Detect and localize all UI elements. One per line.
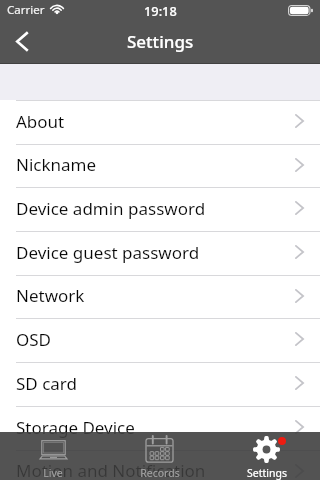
- button[interactable]: Device admin password: [0, 187, 320, 231]
- button[interactable]: Motion and Notification: [0, 450, 320, 480]
- staticText: 19:18: [144, 2, 177, 19]
- button[interactable]: Nickname: [0, 144, 320, 187]
- staticText: Network: [16, 284, 85, 307]
- button[interactable]: Back: [2, 20, 42, 63]
- button[interactable]: Settings: [213, 432, 320, 480]
- button[interactable]: OSD: [0, 318, 320, 362]
- button[interactable]: Device guest password: [0, 231, 320, 275]
- button[interactable]: Live: [0, 432, 106, 480]
- staticText: Motion and Notification: [16, 459, 206, 480]
- button[interactable]: SD card: [0, 362, 320, 406]
- staticText: SD card: [16, 372, 77, 395]
- button[interactable]: Records: [106, 432, 213, 480]
- staticText: About: [16, 110, 65, 133]
- button[interactable]: Storage Device: [0, 406, 320, 450]
- staticText: OSD: [16, 328, 52, 351]
- staticText: Settings: [247, 466, 287, 480]
- staticText: Settings: [127, 30, 194, 53]
- button[interactable]: Network: [0, 275, 320, 318]
- button[interactable]: About: [0, 100, 320, 144]
- staticText: Device guest password: [16, 241, 200, 264]
- staticText: Records: [140, 466, 180, 480]
- staticText: Storage Device: [16, 416, 135, 439]
- staticText: Device admin password: [16, 197, 206, 220]
- staticText: Nickname: [16, 153, 97, 176]
- staticText: Carrier: [7, 2, 45, 18]
- staticText: Live: [43, 466, 63, 480]
